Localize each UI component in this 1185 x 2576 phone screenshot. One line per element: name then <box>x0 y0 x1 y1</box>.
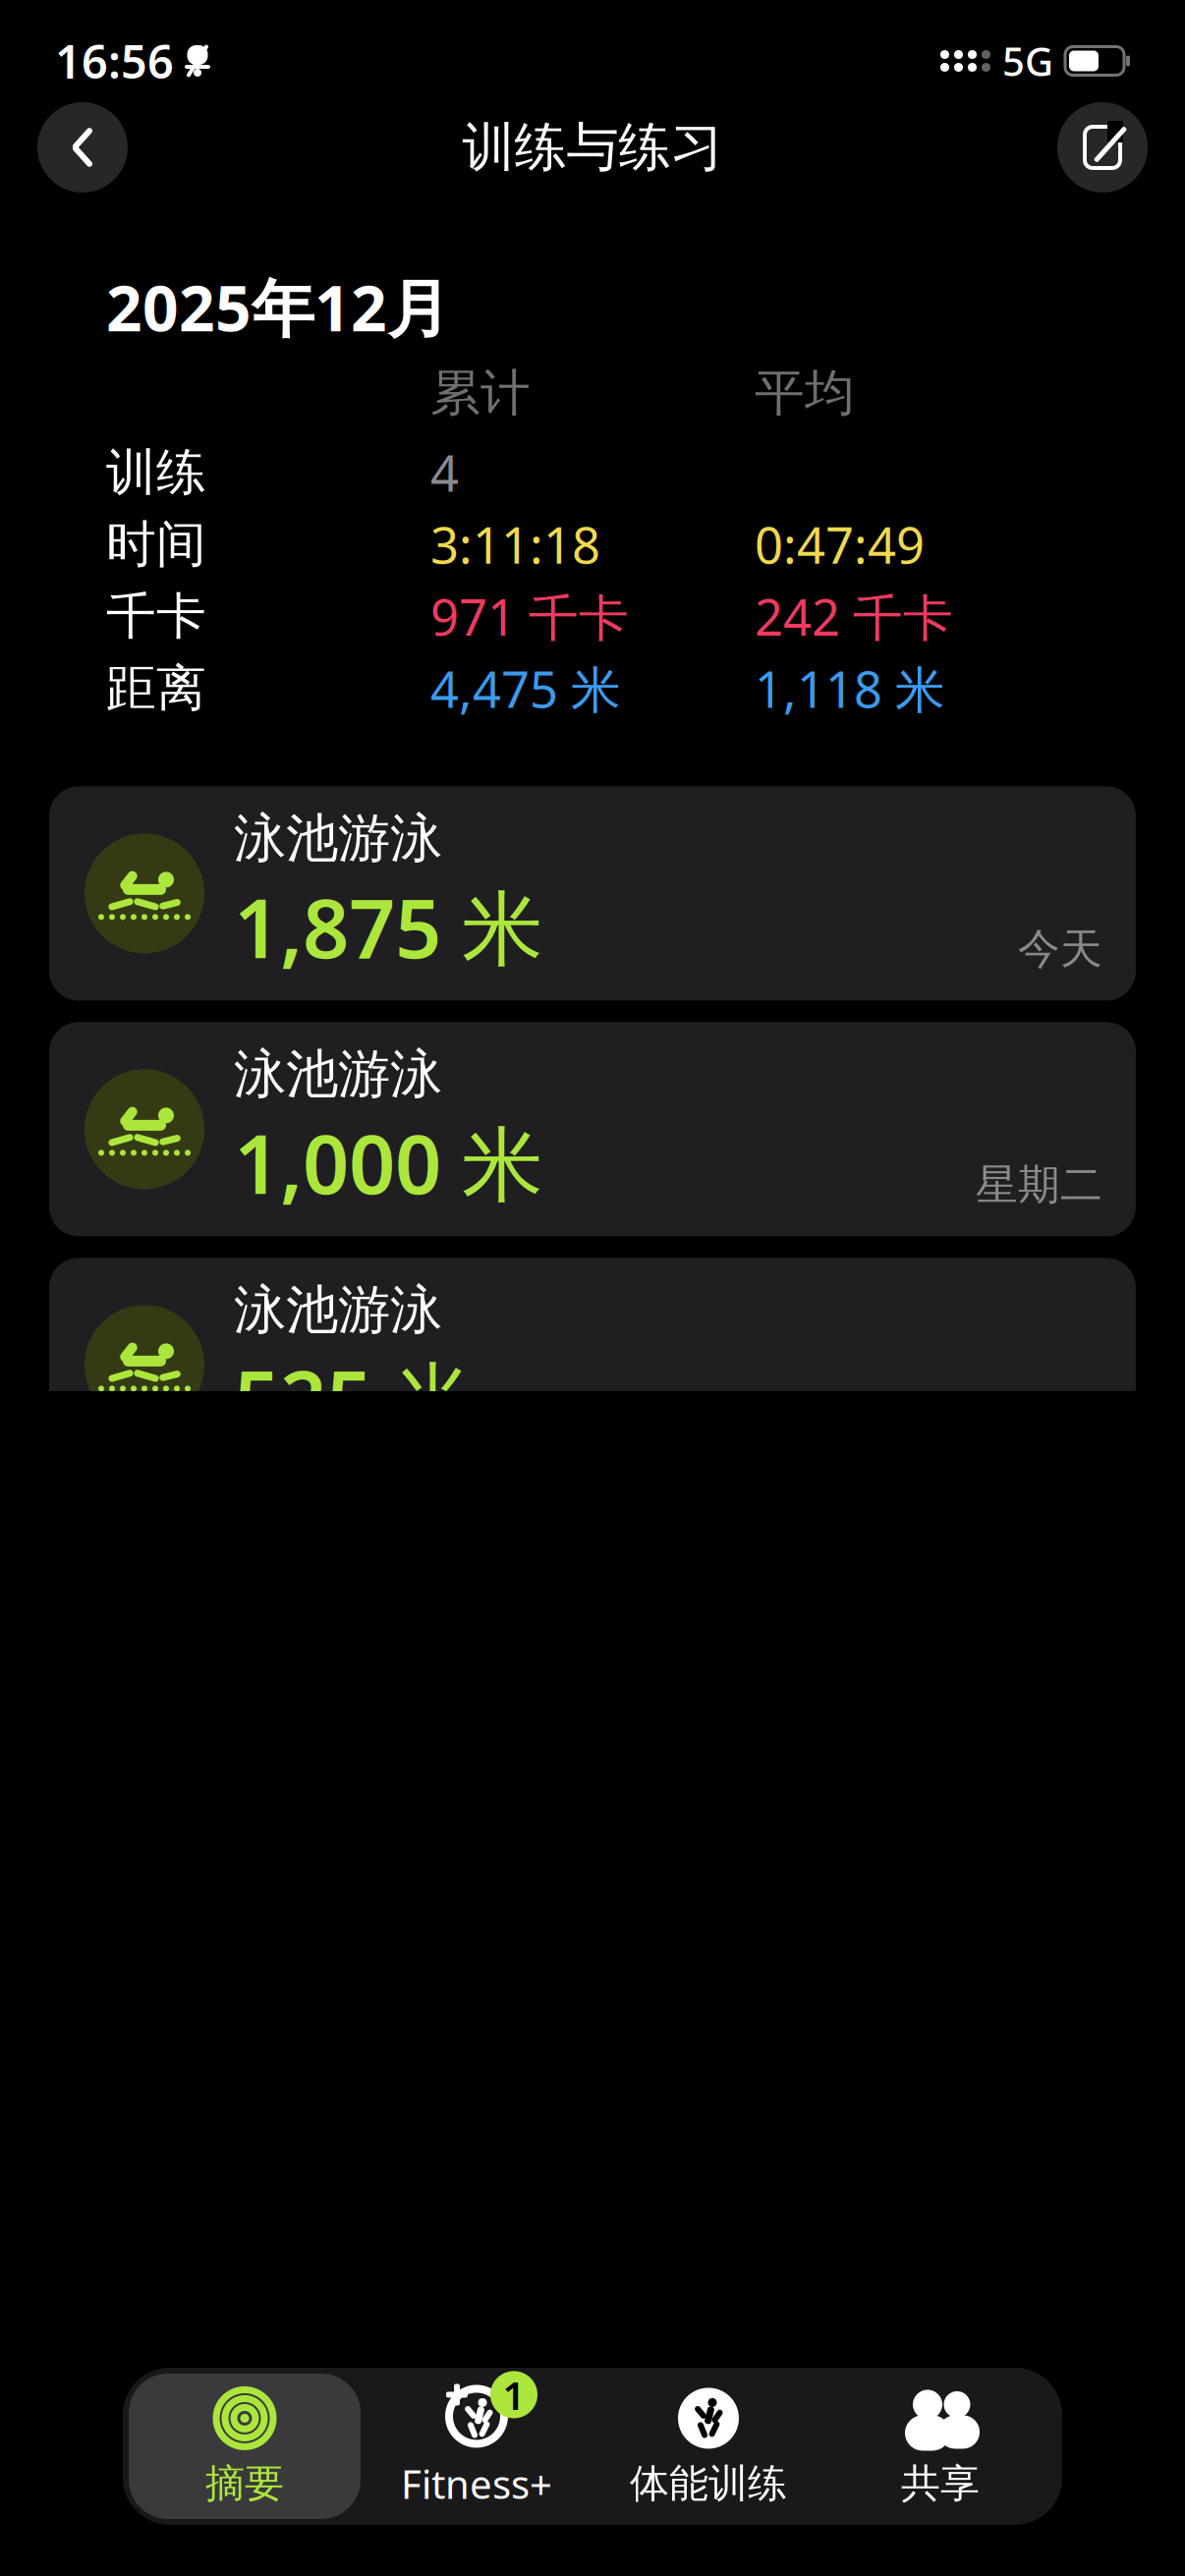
staticText: 共享 <box>901 2459 980 2508</box>
button[interactable]: 泳池游泳 <box>49 1022 1136 1236</box>
staticText: 泳池游泳 <box>234 1278 442 1342</box>
staticText: 星期二 <box>976 1159 1102 1211</box>
staticText: 泳池游泳 <box>234 1042 442 1106</box>
button[interactable]: 摘要 <box>129 2374 361 2519</box>
button[interactable]: 泳池游泳 <box>49 786 1136 1001</box>
staticText: 2025年12月 <box>106 265 450 349</box>
staticText: 1,000 米 <box>234 1108 543 1216</box>
button[interactable]: 泳池游泳 <box>49 1258 1136 1472</box>
staticText: 1 <box>503 2369 525 2421</box>
staticText: 4,475 米 <box>430 655 621 722</box>
staticText: 累计 <box>430 363 531 424</box>
staticText: 1,118 米 <box>755 655 945 722</box>
staticText: 242 千卡 <box>755 583 953 650</box>
staticText: 时间 <box>106 514 206 575</box>
button[interactable]: 体能训练 <box>592 2374 824 2519</box>
staticText: 0:47:49 <box>755 511 925 577</box>
button[interactable]: 返回 <box>37 102 128 193</box>
staticText: Fitness+ <box>401 2458 552 2510</box>
staticText: 距离 <box>106 658 206 719</box>
staticText: 16:56 <box>55 30 174 91</box>
staticText: 3:11:18 <box>430 511 600 577</box>
staticText: 摘要 <box>205 2459 284 2508</box>
button[interactable]: 共享 <box>824 2374 1056 2519</box>
staticText: 泳池游泳 <box>234 806 442 871</box>
staticText: 525 米 <box>234 1344 475 1452</box>
staticText: 2025/12/14 <box>882 1391 1102 1447</box>
staticText: 千卡 <box>106 586 206 647</box>
staticText: 平均 <box>755 363 855 424</box>
staticText: 训练 <box>106 442 206 503</box>
staticText: 1,875 米 <box>234 873 543 980</box>
staticText: 971 千卡 <box>430 583 629 650</box>
staticText: 4 <box>430 439 459 505</box>
staticText: 训练与练习 <box>462 115 723 179</box>
button[interactable]: 编辑 <box>1057 102 1148 193</box>
staticText: 今天 <box>1018 924 1102 975</box>
staticText: 体能训练 <box>630 2459 787 2508</box>
button[interactable]: 1 <box>361 2374 592 2519</box>
staticText: 5G <box>1002 35 1053 87</box>
